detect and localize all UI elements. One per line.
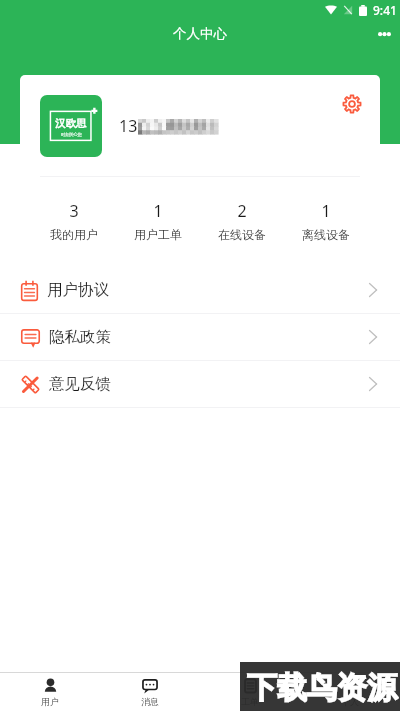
staticText: 13: [119, 115, 138, 137]
staticText: 隐私政策: [49, 327, 111, 347]
staticText: 9:41: [373, 2, 397, 18]
staticText: 2: [237, 200, 247, 222]
button[interactable]: 个人: [300, 673, 400, 711]
button[interactable]: 1: [116, 177, 200, 265]
staticText: 用户: [41, 696, 59, 707]
button[interactable]: 2: [200, 177, 284, 265]
staticText: 离线设备: [302, 227, 350, 242]
staticText: 下载鸟资源: [247, 669, 397, 707]
button[interactable]: 用户协议: [0, 267, 400, 314]
button[interactable]: 1: [284, 177, 368, 265]
staticText: 个人: [341, 696, 359, 707]
staticText: 个人中心: [173, 25, 227, 42]
button[interactable]: 消息: [100, 673, 200, 711]
button[interactable]: Settings: [336, 88, 368, 120]
button[interactable]: 意见反馈: [0, 361, 400, 408]
staticText: 在线设备: [218, 227, 266, 242]
staticText: 1: [153, 200, 163, 222]
staticText: 汉欧思: [55, 117, 87, 130]
staticText: 1: [321, 200, 331, 222]
staticText: 消息: [141, 696, 159, 707]
button[interactable]: 工单: [200, 673, 300, 711]
staticText: 用户协议: [47, 280, 109, 300]
button[interactable]: 用户: [0, 673, 100, 711]
staticText: 我的用户: [50, 227, 98, 242]
staticText: 意见反馈: [49, 374, 111, 394]
button[interactable]: More options: [369, 20, 400, 46]
button[interactable]: 隐私政策: [0, 314, 400, 361]
button[interactable]: 3: [32, 177, 116, 265]
staticText: 用户工单: [134, 227, 182, 242]
staticText: 时刻关心您: [61, 132, 82, 137]
staticText: 3: [69, 200, 79, 222]
